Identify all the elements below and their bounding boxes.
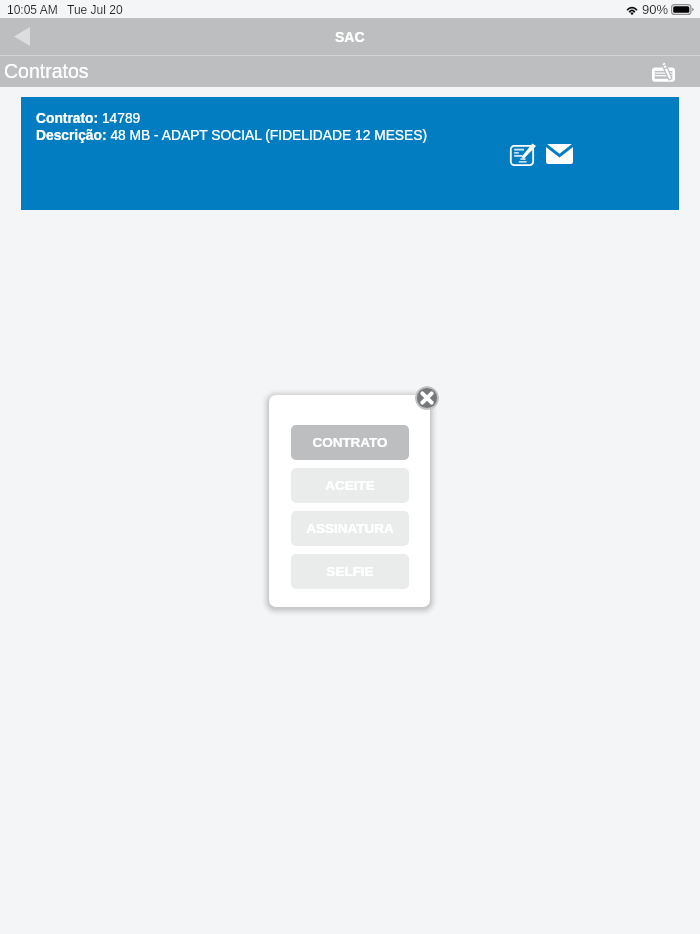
button[interactable]: Back [0, 18, 44, 55]
button[interactable]: CONTRATO [291, 425, 409, 460]
button[interactable]: ACEITE [291, 468, 409, 503]
staticText: ACEITE [325, 478, 375, 493]
button[interactable]: Sign contract [508, 139, 538, 169]
staticText: SAC [335, 29, 365, 45]
button[interactable]: Email [544, 139, 574, 169]
button[interactable]: Close [415, 386, 439, 410]
button[interactable]: Sign contract [648, 57, 678, 87]
staticText: ASSINATURA [306, 521, 394, 536]
staticText: SELFIE [326, 564, 374, 579]
staticText: Contratos [4, 60, 89, 82]
staticText: CONTRATO [312, 435, 388, 450]
button[interactable]: ASSINATURA [291, 511, 409, 546]
staticText: 10:05 AM [7, 3, 58, 16]
staticText: 90% [642, 2, 669, 17]
staticText: Contrato: 14789 Descrição: 48 MB - ADAPT… [36, 111, 428, 143]
staticText: Tue Jul 20 [67, 3, 123, 16]
button[interactable]: SELFIE [291, 554, 409, 589]
